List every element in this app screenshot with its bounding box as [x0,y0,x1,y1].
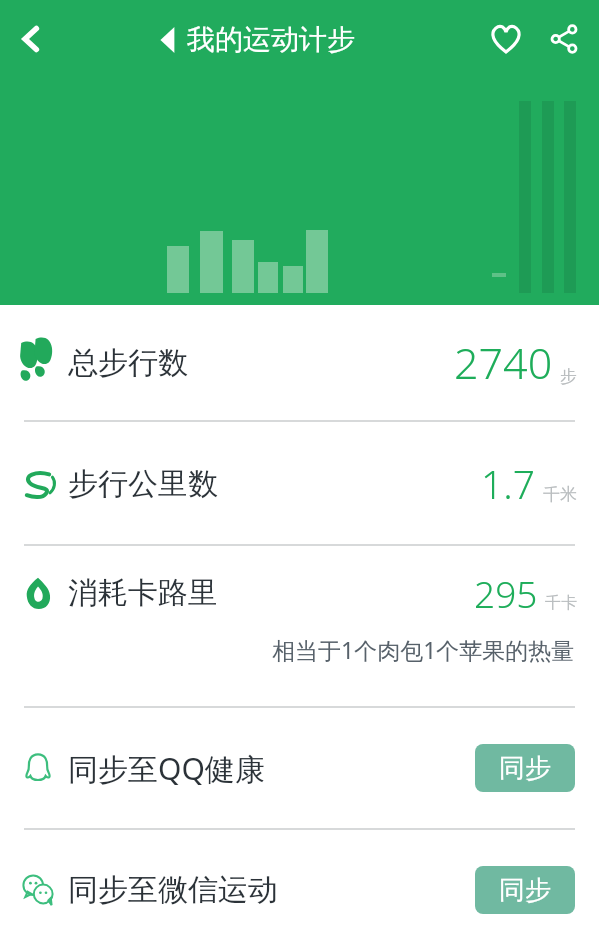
staticText: 相当于1个肉包1个苹果的热量 [272,634,575,665]
staticText: 我的运动计步 [187,22,355,57]
button[interactable]: 同步 [475,866,575,914]
staticText: 步行公里数 [68,465,218,503]
staticText: 消耗卡路里 [68,574,218,612]
staticText: 同步至微信运动 [68,871,278,909]
button[interactable]: 同步 [475,744,575,792]
staticText: 步 [560,366,577,387]
button[interactable]: Favorite [477,10,535,68]
button[interactable]: 消耗卡路里 [0,546,599,706]
button[interactable]: Share [535,10,593,68]
button[interactable]: 步行公里数 [0,422,599,544]
staticText: 同步 [499,752,551,785]
staticText: 1.7 [481,457,536,510]
staticText: 千卡 [545,593,577,613]
staticText: 295 [474,568,538,618]
staticText: 总步行数 [68,344,188,382]
staticText: 同步 [499,874,551,907]
staticText: 千米 [543,484,577,505]
button[interactable]: 总步行数 [0,305,599,420]
staticText: 同步至QQ健康 [68,748,265,789]
staticText: 2740 [454,333,553,392]
button[interactable]: Back [0,8,62,70]
